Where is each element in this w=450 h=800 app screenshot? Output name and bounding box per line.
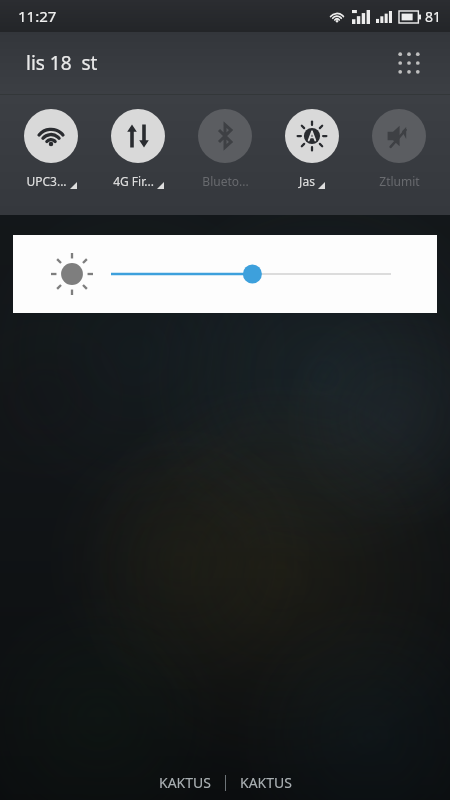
staticText: KAKTUS [240, 773, 292, 792]
button[interactable] [13, 235, 437, 313]
button[interactable]: Jas [277, 103, 347, 207]
staticText: Blueto... [202, 173, 249, 189]
staticText: lis 18 st [26, 50, 98, 76]
button[interactable]: UPC3... [16, 103, 86, 207]
button[interactable]: 4G Fir... [103, 103, 173, 207]
staticText: Jas [299, 173, 315, 189]
staticText: 4G Fir... [113, 173, 154, 189]
staticText: KAKTUS [159, 773, 211, 792]
staticText: Ztlumit [379, 173, 420, 189]
button[interactable]: lis 18 st [26, 50, 98, 76]
button[interactable]: Blueto... [190, 103, 260, 207]
button[interactable] [111, 261, 391, 287]
button[interactable]: All settings [392, 46, 426, 80]
staticText: 81 [425, 7, 442, 26]
staticText: 11:27 [18, 6, 57, 26]
staticText: UPC3... [26, 173, 67, 189]
button[interactable]: Ztlumit [364, 103, 434, 207]
